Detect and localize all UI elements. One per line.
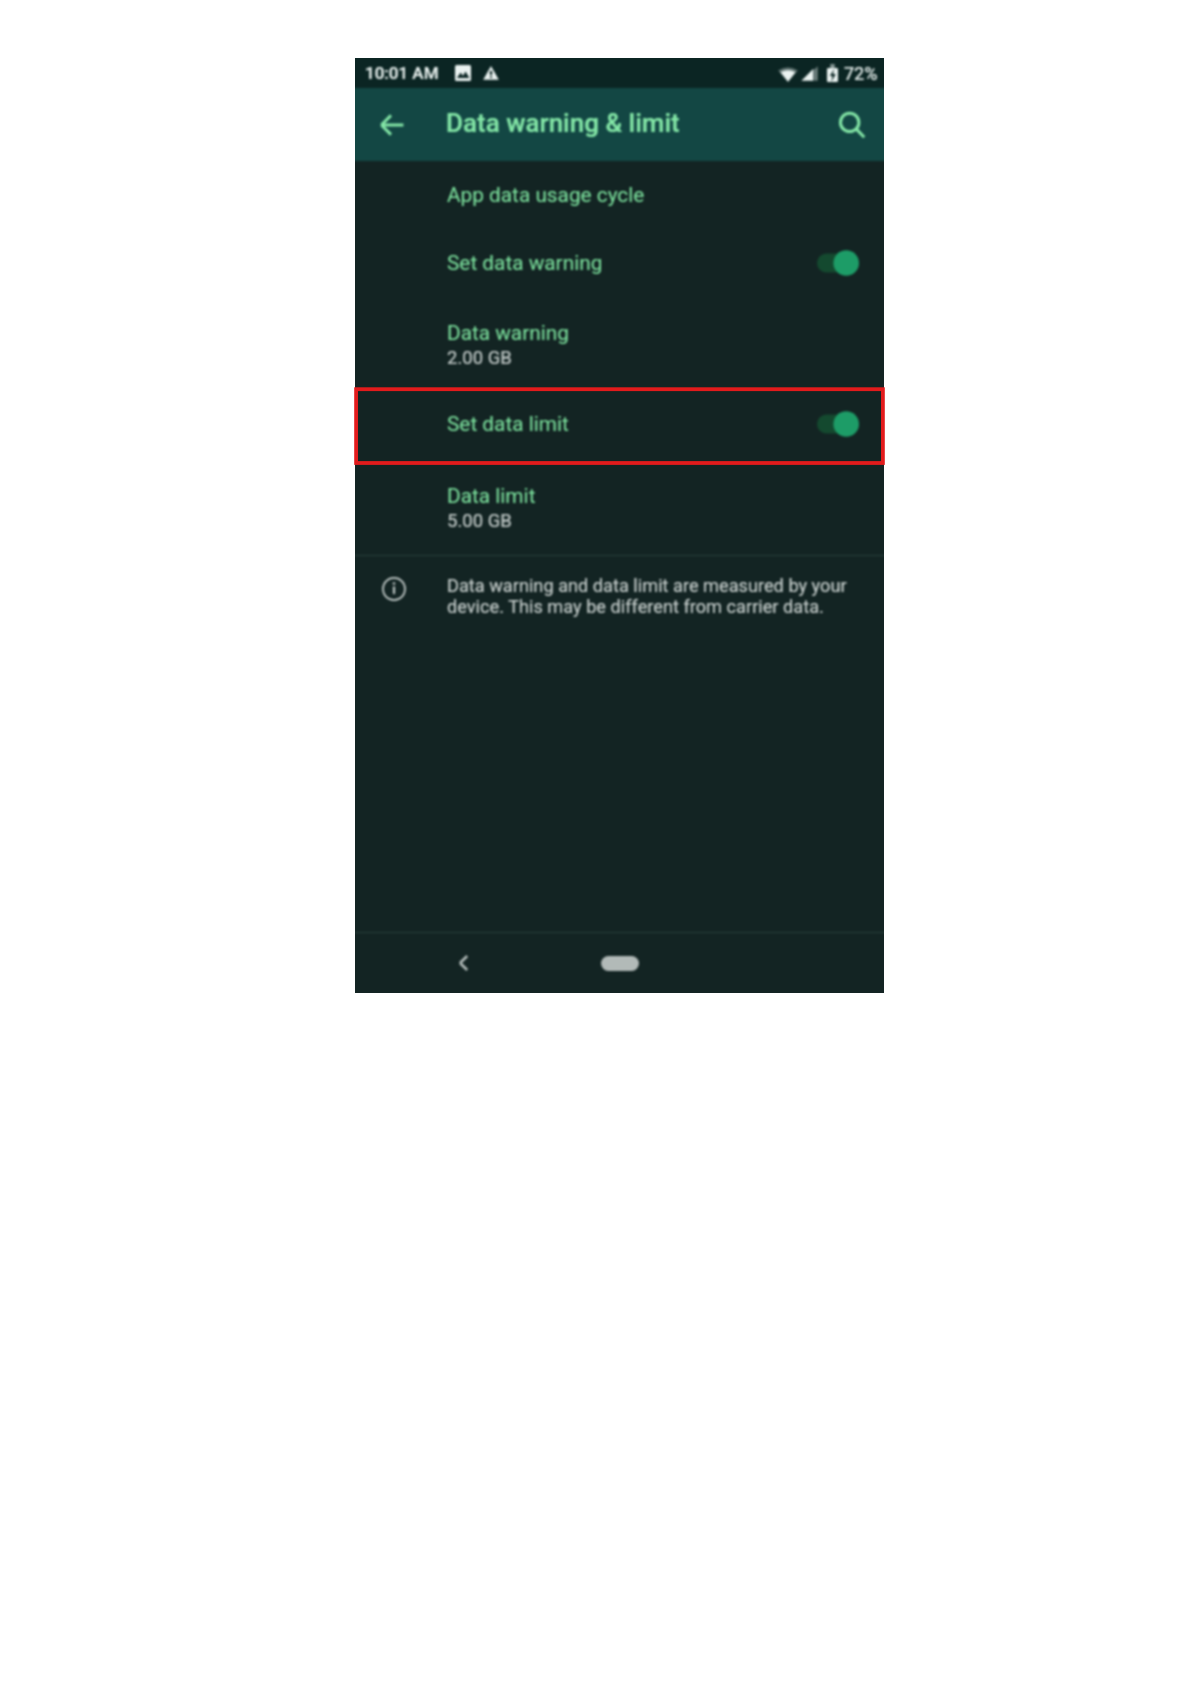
- button[interactable]: Navigate up: [368, 101, 416, 149]
- staticText: 5.00 GB: [447, 510, 512, 532]
- staticText: Set data limit: [447, 412, 569, 436]
- other: Screenshot saved: [455, 65, 471, 81]
- staticText: App data usage cycle: [447, 183, 645, 207]
- staticText: Data warning and data limit are measured…: [447, 575, 852, 618]
- staticText: Data limit: [447, 484, 536, 508]
- button[interactable]: Back: [444, 943, 484, 983]
- other: Mobile signal: [801, 65, 818, 82]
- button[interactable]: App data usage cycle: [355, 161, 884, 228]
- button[interactable]: Set data warning: [355, 228, 884, 298]
- button[interactable]: Home: [588, 949, 652, 977]
- staticText: Data warning: [447, 321, 569, 345]
- staticText: 2.00 GB: [447, 347, 512, 369]
- button[interactable]: Data warning: [355, 298, 884, 390]
- staticText: 72%: [844, 63, 878, 84]
- other: Wi-Fi: [778, 64, 798, 82]
- other: Battery charging 72 percent: [827, 64, 838, 82]
- other: Information: [382, 577, 406, 601]
- button[interactable]: Data limit: [355, 458, 884, 555]
- staticText: Set data warning: [447, 251, 603, 275]
- other: Warning: [483, 65, 499, 81]
- button[interactable]: Set data limit: [355, 390, 884, 458]
- staticText: 10:01 AM: [365, 63, 439, 83]
- staticText: Data warning & limit: [446, 108, 680, 138]
- button[interactable]: Search: [828, 101, 876, 149]
